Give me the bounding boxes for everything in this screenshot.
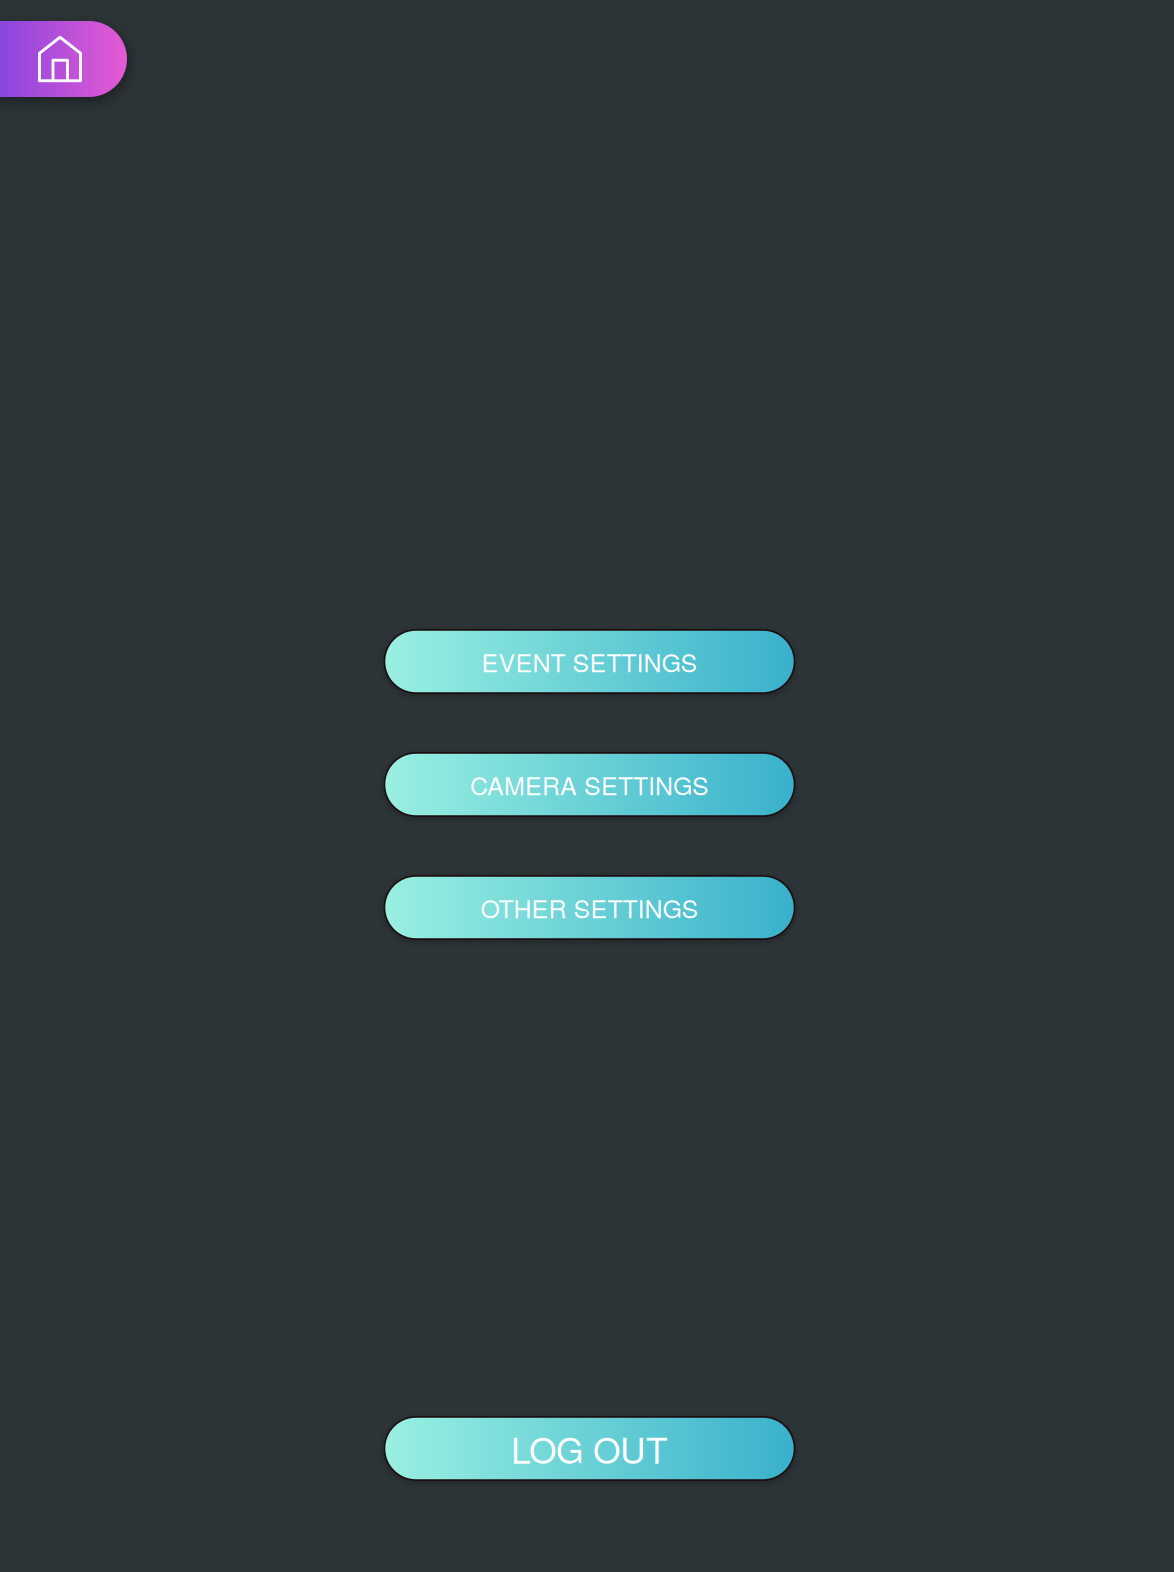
button[interactable]: Home xyxy=(0,21,127,97)
staticText: LOG OUT xyxy=(511,1423,668,1474)
button[interactable]: EVENT SETTINGS xyxy=(384,630,794,693)
staticText: OTHER SETTINGS xyxy=(480,890,698,925)
staticText: EVENT SETTINGS xyxy=(481,644,697,679)
staticText: CAMERA SETTINGS xyxy=(470,767,709,802)
button[interactable]: CAMERA SETTINGS xyxy=(384,753,794,816)
button[interactable]: LOG OUT xyxy=(384,1417,794,1480)
button[interactable]: OTHER SETTINGS xyxy=(384,876,794,939)
